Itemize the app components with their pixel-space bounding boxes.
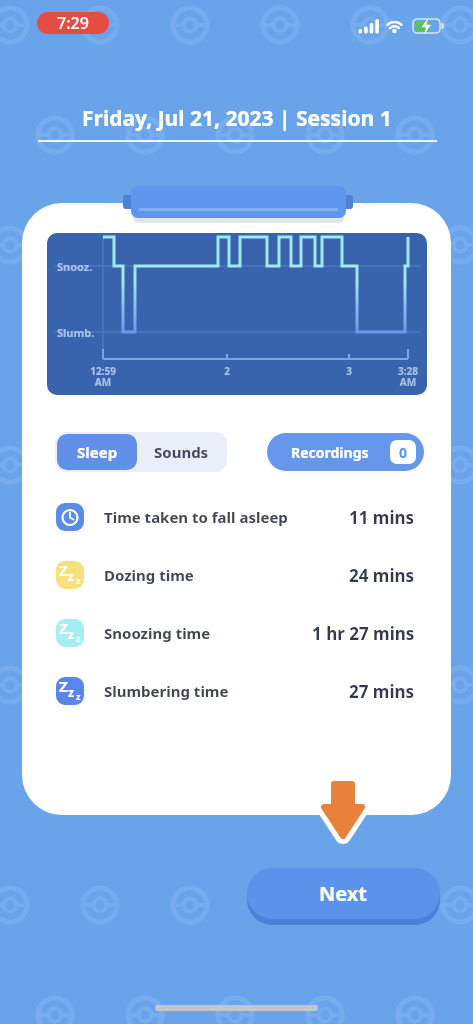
staticText: Recordings <box>291 443 369 462</box>
button[interactable]: Recordings <box>267 433 424 471</box>
staticText: Z <box>59 676 68 696</box>
button[interactable]: Sounds <box>137 434 225 470</box>
staticText: z <box>76 632 81 644</box>
staticText: 24 mins <box>349 564 415 587</box>
staticText: 12:59 AM <box>85 364 121 389</box>
button[interactable]: Sleep <box>57 434 137 470</box>
staticText: Next <box>319 880 368 907</box>
staticText: Slumb. <box>57 325 97 340</box>
staticText: Z <box>59 560 68 580</box>
staticText: 11 mins <box>349 506 415 529</box>
staticText: Friday, Jul 21, 2023 | Session 1 <box>82 104 392 133</box>
staticText: z <box>68 684 74 700</box>
staticText: 7:29 <box>57 12 89 34</box>
staticText: Snoozing time <box>104 623 211 643</box>
staticText: 27 mins <box>349 680 415 703</box>
staticText: Dozing time <box>104 565 194 585</box>
staticText: 0 <box>399 443 408 462</box>
staticText: z <box>68 568 74 584</box>
staticText: 3 <box>343 364 355 378</box>
staticText: Z <box>59 618 68 638</box>
staticText: Snooz. <box>57 259 97 274</box>
staticText: z <box>76 574 81 586</box>
staticText: Sleep <box>77 442 118 462</box>
staticText: Slumbering time <box>104 681 229 701</box>
staticText: 1 hr 27 mins <box>312 622 415 645</box>
staticText: 3:28 AM <box>390 364 426 389</box>
staticText: Time taken to fall asleep <box>104 507 288 527</box>
staticText: z <box>68 626 74 642</box>
staticText: Sounds <box>154 442 209 462</box>
staticText: z <box>76 690 81 702</box>
staticText: 2 <box>221 364 233 378</box>
button[interactable]: Next <box>247 868 440 919</box>
